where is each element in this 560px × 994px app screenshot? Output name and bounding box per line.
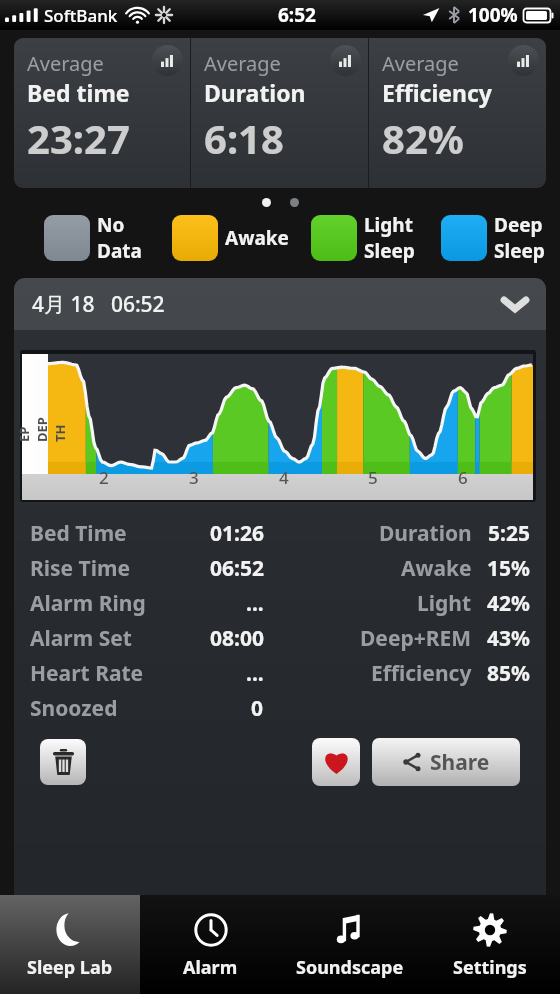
staticText: 42% [487,589,530,618]
staticText: Average [27,50,104,77]
staticText: 6:18 [204,111,284,165]
staticText: Awake [225,225,289,251]
button[interactable]: Show chart [152,45,183,76]
staticText: Bed Time [30,519,127,548]
staticText: 100% [468,2,518,28]
button[interactable]: Average [191,38,368,188]
staticText: Average [204,50,281,77]
staticText: 2 [99,466,109,489]
staticText: Soundscape [296,955,404,980]
staticText: 0 [251,694,264,723]
staticText: Settings [453,955,527,980]
staticText: 08:00 [210,624,264,653]
button[interactable]: Alarm [140,895,280,994]
button[interactable]: 4月 18 06:52 [14,278,546,330]
staticText: Alarm [183,955,238,980]
staticText: 43% [487,624,530,653]
button[interactable]: Average [369,38,546,188]
button[interactable]: Favorite [312,738,360,786]
staticText: 4 [279,466,289,489]
button[interactable]: Soundscape [280,895,420,994]
staticText: Average [382,50,459,77]
staticText: Awake [401,554,472,583]
staticText: Sleep [494,238,545,264]
staticText: 3 [189,466,199,489]
staticText: Deep+REM [360,624,472,653]
staticText: No [97,212,125,238]
staticText: 06:52 [210,554,264,583]
staticText: Light [364,212,413,238]
staticText: Efficiency [371,659,472,688]
button[interactable]: Settings [420,895,560,994]
staticText: 01:26 [210,519,264,548]
staticText: 85% [487,659,530,688]
button[interactable]: Delete [40,739,86,785]
staticText: Data [97,238,142,264]
staticText: 23:27 [27,111,130,165]
staticText: Rise Time [30,554,131,583]
staticText: 6:52 [278,2,316,28]
staticText: SoftBank [44,4,118,27]
staticText: Share [430,748,490,777]
staticText: Bed time [27,77,130,108]
staticText: Duration [379,519,472,548]
staticText: 6 [458,466,468,489]
staticText: SLEEP DEPTH [14,416,69,442]
button[interactable]: Show chart [330,45,361,76]
staticText: ... [246,589,264,618]
button[interactable]: Average [14,38,190,188]
staticText: 15% [487,554,530,583]
staticText: Light [417,589,472,618]
staticText: Efficiency [382,77,492,108]
button[interactable]: Sleep Lab [0,895,140,994]
staticText: Deep [494,212,543,238]
staticText: Sleep [364,238,415,264]
button[interactable]: Share [372,738,520,786]
staticText: 4月 18 06:52 [32,290,165,319]
staticText: Alarm Set [30,624,132,653]
button[interactable]: Show chart [508,45,539,76]
staticText: Heart Rate [30,659,144,688]
staticText: 5 [368,466,378,489]
staticText: 82% [382,111,464,165]
staticText: Snoozed [30,694,118,723]
staticText: Alarm Ring [30,589,146,618]
staticText: 5:25 [488,519,530,548]
staticText: Duration [204,77,306,108]
staticText: ... [246,659,264,688]
staticText: Sleep Lab [27,955,113,980]
